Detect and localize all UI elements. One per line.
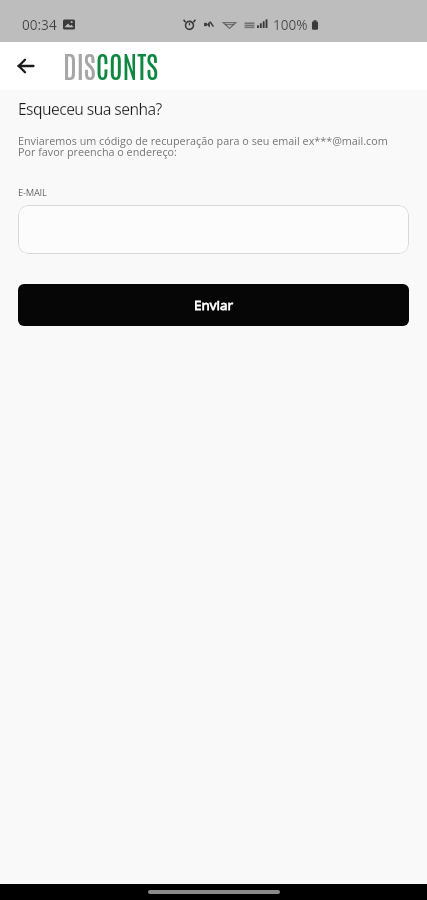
staticText: 00:34 xyxy=(22,15,57,34)
button[interactable]: Enviar xyxy=(18,284,409,326)
staticText: Enviar xyxy=(194,296,233,314)
button[interactable] xyxy=(18,205,409,254)
button[interactable]: Back xyxy=(7,47,45,85)
staticText: DISCONTS xyxy=(63,46,159,84)
staticText: 100% xyxy=(273,15,308,34)
staticText: E-MAIL xyxy=(18,186,47,199)
staticText: Esqueceu sua senha? xyxy=(18,98,162,119)
staticText: Enviaremos um código de recuperação para… xyxy=(18,133,388,160)
